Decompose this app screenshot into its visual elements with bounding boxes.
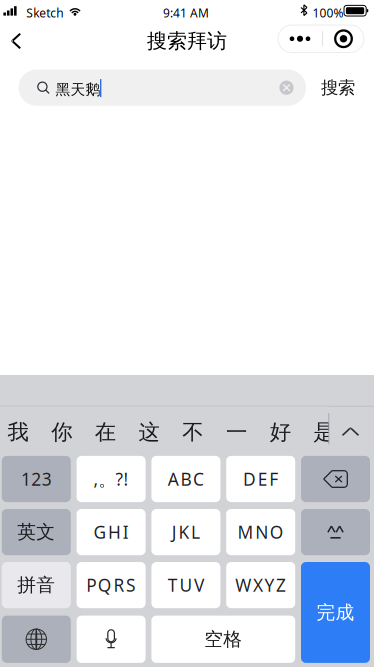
button[interactable]: GHI	[77, 509, 146, 555]
button[interactable]	[301, 509, 370, 555]
button[interactable]: 空格	[151, 616, 295, 663]
staticText: WXYZ	[235, 574, 286, 597]
button[interactable]: 不	[171, 408, 215, 456]
button[interactable]: Expand candidates	[332, 408, 368, 456]
button[interactable]: 是	[302, 408, 346, 456]
staticText: 英文	[17, 521, 55, 543]
button[interactable]: 你	[40, 408, 83, 456]
button[interactable]: 好	[258, 408, 302, 456]
staticText: 是	[313, 419, 334, 445]
staticText: 在	[95, 419, 116, 445]
staticText: PQRS	[86, 574, 136, 597]
button[interactable]: Back	[0, 22, 37, 60]
button[interactable]: 一	[215, 408, 258, 456]
staticText: JKL	[172, 521, 200, 544]
staticText: GHI	[93, 521, 129, 544]
button[interactable]: MNO	[226, 509, 295, 555]
staticText: 拼音	[17, 574, 55, 596]
button[interactable]	[2, 616, 71, 663]
staticText: 100%	[312, 5, 343, 21]
staticText: Sketch	[26, 5, 63, 21]
staticText: 9:41 AM	[163, 5, 209, 21]
button[interactable]: 我	[0, 408, 40, 456]
button[interactable]: 在	[83, 408, 127, 456]
button[interactable]: WXYZ	[226, 562, 295, 608]
button[interactable]: More options	[278, 25, 322, 52]
staticText: ABC	[168, 467, 204, 490]
staticText: 搜索拜访	[147, 29, 227, 53]
button[interactable]: ,。?!	[77, 456, 146, 502]
button[interactable]: 英文	[2, 509, 71, 555]
staticText: ,。?!	[94, 467, 129, 490]
button[interactable]: 黑天鹅	[19, 70, 306, 106]
button[interactable]: Clear text	[271, 70, 301, 106]
button[interactable]	[301, 456, 370, 502]
button[interactable]: 这	[127, 408, 171, 456]
staticText: MNO	[238, 521, 284, 544]
staticText: DEF	[243, 467, 278, 490]
staticText: 这	[139, 419, 160, 445]
staticText: 搜索	[321, 77, 355, 98]
staticText: 123	[21, 467, 52, 490]
staticText: 完成	[316, 601, 354, 624]
staticText: 不	[182, 419, 203, 445]
button[interactable]: ABC	[151, 456, 220, 502]
button[interactable]: 完成	[301, 562, 370, 663]
button[interactable]	[77, 616, 146, 663]
button[interactable]: Close mini program	[323, 25, 364, 52]
button[interactable]: DEF	[226, 456, 295, 502]
button[interactable]: 拼音	[2, 562, 71, 608]
staticText: 空格	[204, 628, 242, 651]
staticText: TUV	[168, 574, 204, 597]
staticText: 黑天鹅	[56, 81, 101, 99]
button[interactable]: 搜索	[312, 70, 364, 106]
button[interactable]: JKL	[151, 509, 220, 555]
staticText: 一	[226, 419, 247, 445]
staticText: 你	[51, 419, 72, 445]
staticText: 好	[270, 419, 291, 445]
button[interactable]: 123	[2, 456, 71, 502]
button[interactable]: TUV	[151, 562, 220, 608]
button[interactable]: PQRS	[77, 562, 146, 608]
staticText: 我	[7, 419, 28, 445]
